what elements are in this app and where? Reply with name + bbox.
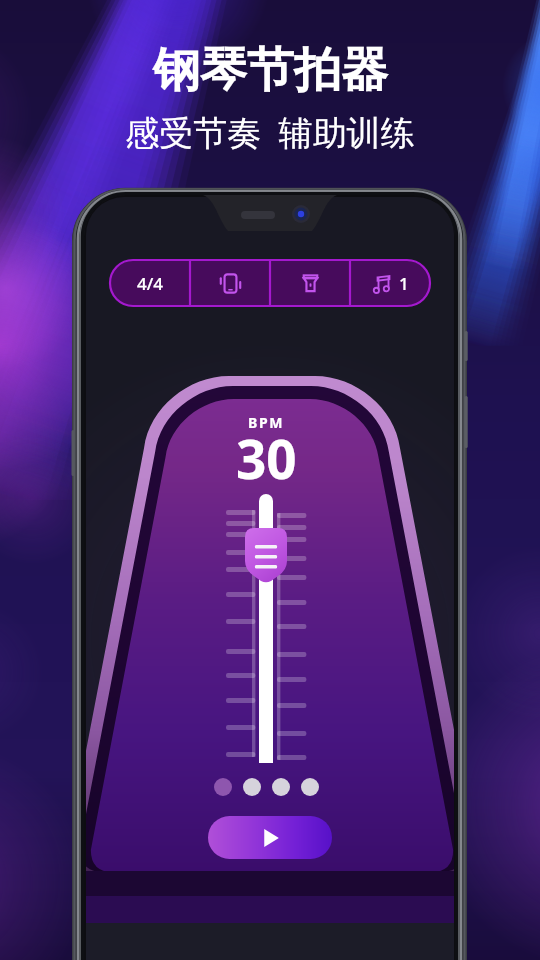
staticText: 30 (236, 422, 297, 494)
staticText: BPM (248, 413, 285, 432)
button[interactable]: 1 (350, 260, 430, 306)
staticText: 1 (399, 272, 409, 295)
staticText: 钢琴节拍器 (153, 41, 388, 100)
staticText: 感受节奏 辅助训练 (125, 109, 415, 155)
button[interactable]: Play (208, 816, 332, 859)
button[interactable]: Vibration (190, 260, 270, 306)
button[interactable]: Flashlight (270, 260, 350, 306)
staticText: 4/4 (137, 272, 163, 295)
button[interactable]: 4/4 (110, 260, 190, 306)
